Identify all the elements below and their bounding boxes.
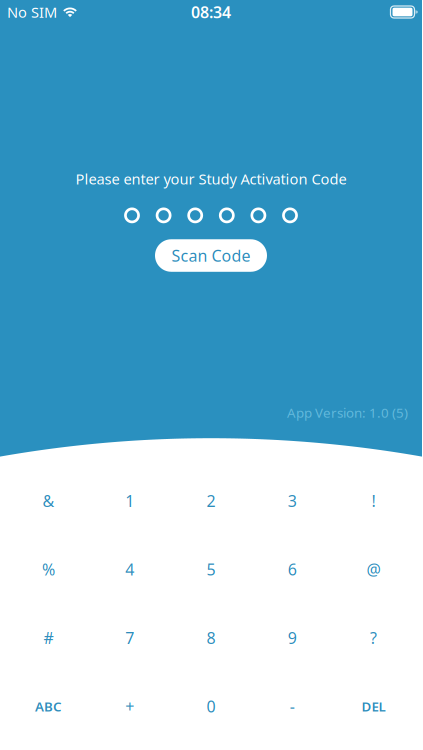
button[interactable]: ! [333, 466, 414, 535]
button[interactable]: 1 [89, 466, 170, 535]
staticText: App Version: 1.0 (5) [287, 404, 408, 421]
button[interactable]: 4 [89, 535, 170, 603]
staticText: & [43, 490, 55, 511]
button[interactable]: ? [333, 603, 414, 672]
button[interactable]: % [8, 535, 89, 603]
staticText: 3 [288, 490, 297, 511]
button[interactable]: & [8, 466, 89, 535]
staticText: 8 [206, 627, 215, 648]
staticText: 0 [206, 696, 215, 717]
staticText: 6 [288, 559, 297, 580]
staticText: # [44, 627, 54, 648]
staticText: 1 [125, 490, 134, 511]
staticText: 5 [206, 559, 215, 580]
button[interactable]: - [252, 672, 333, 740]
staticText: No SIM [7, 2, 57, 22]
button[interactable]: 5 [170, 535, 252, 603]
button[interactable]: 9 [252, 603, 333, 672]
staticText: 9 [288, 627, 297, 648]
staticText: 08:34 [191, 1, 231, 23]
staticText: ABC [35, 697, 62, 715]
button[interactable]: @ [333, 535, 414, 603]
button[interactable]: DEL [333, 672, 414, 740]
staticText: - [290, 696, 295, 717]
button[interactable]: 6 [252, 535, 333, 603]
staticText: 2 [206, 490, 215, 511]
staticText: ! [371, 490, 375, 511]
staticText: + [125, 696, 134, 717]
button[interactable]: + [89, 672, 170, 740]
button[interactable]: 3 [252, 466, 333, 535]
button[interactable]: 7 [89, 603, 170, 672]
staticText: DEL [361, 697, 385, 715]
staticText: Scan Code [171, 245, 250, 266]
staticText: 4 [125, 559, 134, 580]
staticText: Please enter your Study Activation Code [75, 169, 346, 188]
button[interactable]: # [8, 603, 89, 672]
button[interactable]: 8 [170, 603, 252, 672]
button[interactable]: ABC [8, 672, 89, 740]
staticText: 7 [125, 627, 134, 648]
staticText: % [42, 559, 55, 580]
staticText: @ [366, 559, 380, 580]
button[interactable]: 2 [170, 466, 252, 535]
staticText: ? [370, 627, 377, 648]
button[interactable]: Scan Code [155, 239, 267, 272]
button[interactable]: 0 [170, 672, 252, 740]
